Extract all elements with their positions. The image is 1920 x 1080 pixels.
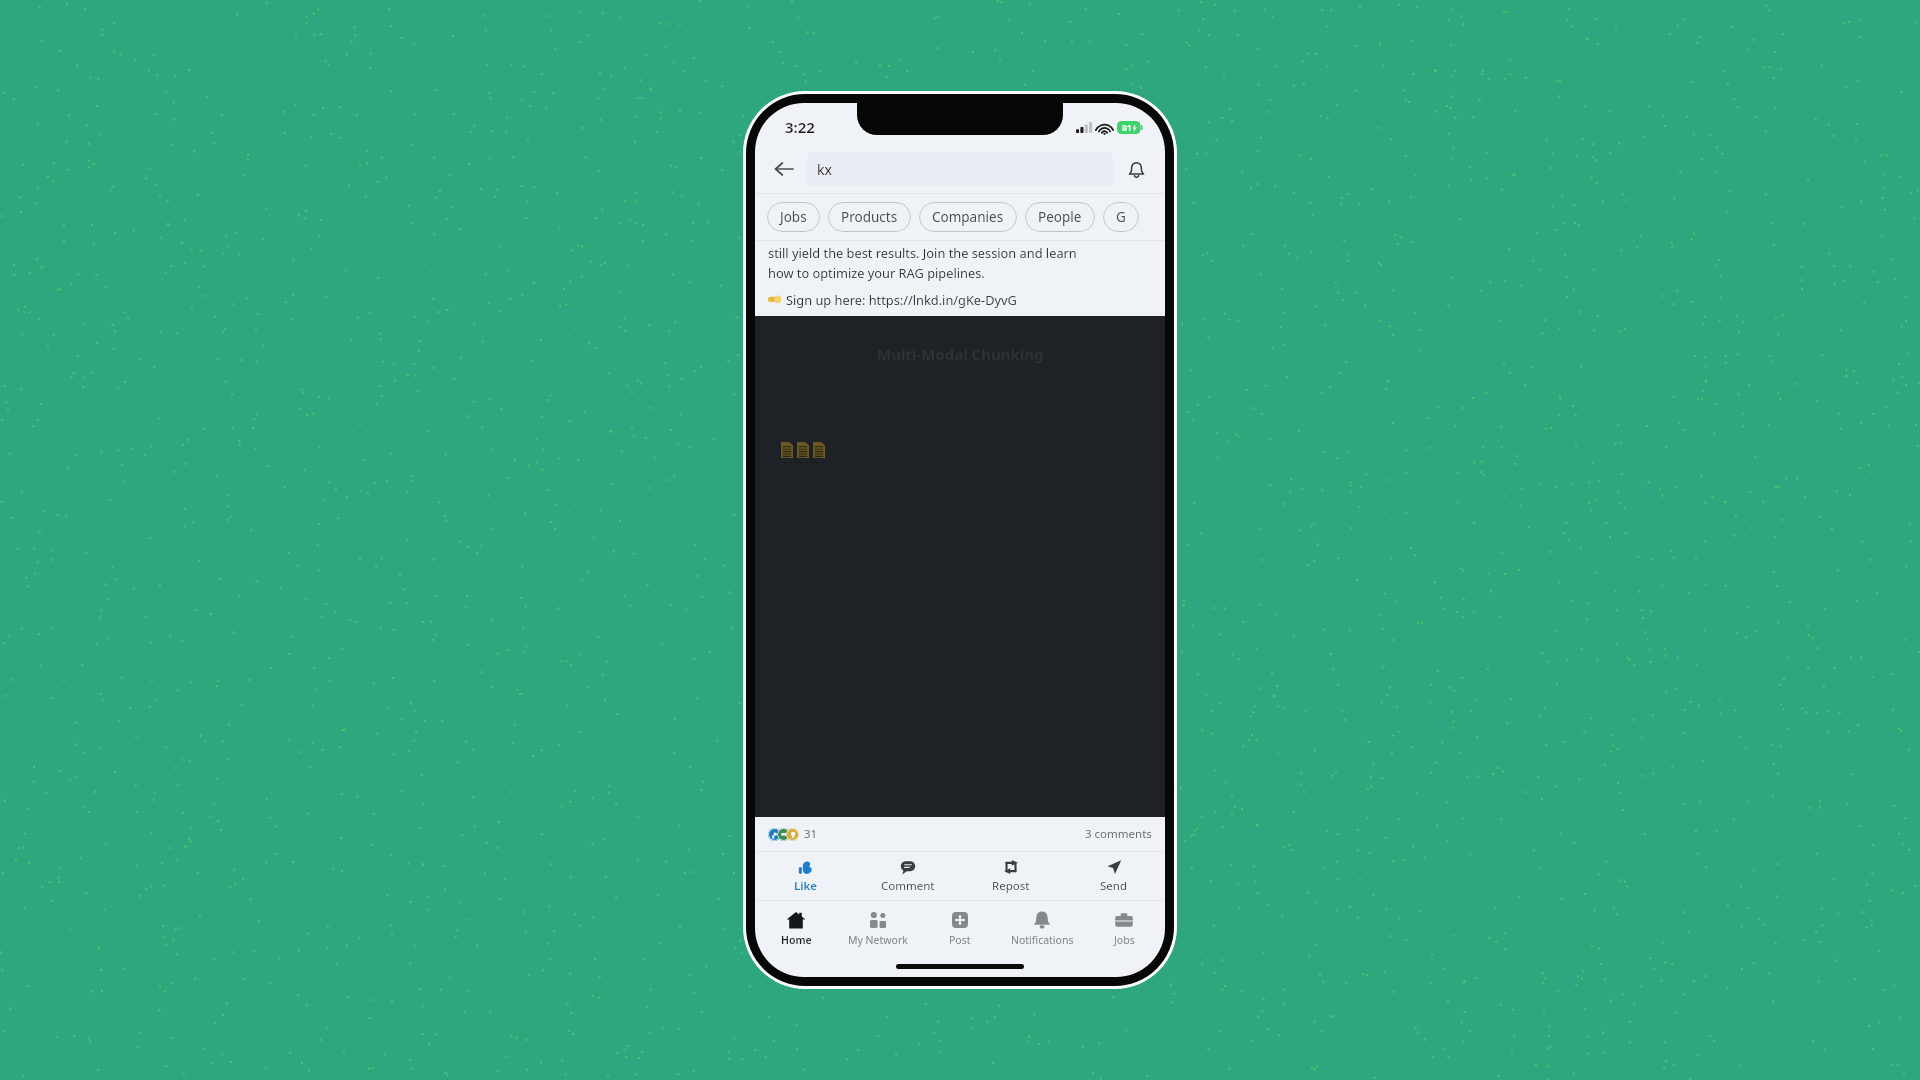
button[interactable]: Back <box>767 152 801 186</box>
button[interactable]: Notifications <box>1119 152 1153 186</box>
button[interactable]: Notifications <box>1001 901 1083 955</box>
button[interactable]: Jobs <box>1083 901 1165 955</box>
staticText: kx <box>817 160 832 179</box>
button[interactable]: Home <box>755 901 837 955</box>
staticText: Jobs <box>1114 933 1135 947</box>
staticText: 31 <box>804 826 818 842</box>
button[interactable]: 3 comments <box>1085 826 1152 842</box>
button[interactable]: Companies <box>919 202 1017 232</box>
button[interactable]: Comment <box>857 852 959 900</box>
button[interactable]: Like <box>755 852 857 900</box>
button[interactable]: Multi-Modal Chunking <box>755 316 1165 817</box>
staticText: Notifications <box>1011 933 1074 947</box>
button[interactable]: Products <box>828 202 911 232</box>
staticText: Companies <box>932 208 1004 226</box>
staticText: 81 <box>1122 122 1132 134</box>
button[interactable]: Repost <box>959 852 1062 900</box>
staticText: Sign up here: https://lnkd.in/gKe-DyvG <box>786 291 1017 308</box>
button[interactable]: People <box>1025 202 1095 232</box>
staticText: Home <box>781 933 812 947</box>
staticText: G <box>1116 208 1126 226</box>
button[interactable]: 31 <box>768 826 818 842</box>
staticText: Repost <box>992 878 1030 894</box>
button[interactable]: G <box>1103 202 1139 232</box>
button[interactable]: Send <box>1062 852 1165 900</box>
button[interactable]: Post <box>919 901 1001 955</box>
staticText: how to optimize your RAG pipelines. <box>768 264 985 281</box>
staticText: Comment <box>881 878 935 894</box>
staticText: Multi-Modal Chunking <box>877 344 1044 364</box>
staticText: Like <box>794 878 818 894</box>
button[interactable]: My Network <box>837 901 919 955</box>
staticText: My Network <box>848 933 908 947</box>
staticText: Products <box>841 208 898 226</box>
staticText: Send <box>1100 878 1127 894</box>
staticText: 3:22 <box>785 117 815 137</box>
staticText: People <box>1038 208 1082 226</box>
staticText: Jobs <box>780 208 807 226</box>
staticText: 3 comments <box>1085 826 1152 842</box>
button[interactable]: Jobs <box>767 202 820 232</box>
button[interactable]: kx <box>807 152 1113 186</box>
staticText: Post <box>949 933 971 947</box>
staticText: still yield the best results. Join the s… <box>768 244 1077 261</box>
